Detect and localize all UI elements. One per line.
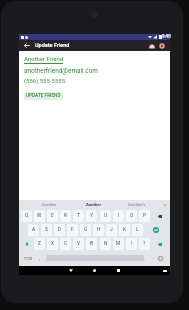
button[interactable]: Home	[147, 41, 156, 50]
button[interactable]: M	[113, 238, 124, 250]
staticText: P	[143, 213, 147, 219]
staticText: B	[90, 241, 93, 247]
button[interactable]: Comma	[33, 251, 46, 265]
button[interactable]: U	[100, 210, 111, 222]
button[interactable]: P	[139, 210, 150, 222]
staticText: Q	[25, 213, 29, 219]
button[interactable]: A	[28, 224, 39, 236]
button[interactable]: F	[67, 224, 78, 236]
button[interactable]: UPDATE FRIEND	[24, 92, 63, 100]
staticText: Another	[42, 202, 57, 207]
button[interactable]: J	[106, 224, 117, 236]
button[interactable]: D	[54, 224, 65, 236]
staticText: (556) 555-5555	[24, 77, 66, 84]
staticText: ?	[143, 241, 146, 247]
button[interactable]: Another	[74, 200, 114, 209]
button[interactable]: C	[60, 238, 71, 250]
button[interactable]: N	[100, 238, 111, 250]
staticText: F	[71, 227, 74, 233]
button[interactable]: Another	[29, 200, 69, 209]
staticText: H	[97, 227, 101, 233]
staticText: 9:48	[162, 34, 171, 39]
button[interactable]: Hide keyboard	[160, 266, 169, 275]
button[interactable]: B	[86, 238, 97, 250]
button[interactable]: K	[119, 224, 130, 236]
staticText: Y	[90, 213, 93, 219]
button[interactable]: Delete friend	[157, 41, 166, 50]
button[interactable]: I	[113, 210, 124, 222]
staticText: Another Friend	[24, 55, 64, 62]
staticText: R	[64, 213, 67, 219]
staticText: Update Friend	[35, 42, 70, 48]
button[interactable]: Q	[21, 210, 32, 222]
button[interactable]: X	[47, 238, 58, 250]
staticText: anotherfriend@email.com	[24, 67, 98, 75]
staticText: T	[77, 213, 80, 219]
button[interactable]: R	[60, 210, 71, 222]
button[interactable]: Y	[86, 210, 97, 222]
button[interactable]: S	[41, 224, 52, 236]
staticText: W	[37, 213, 42, 219]
staticText: Z	[38, 241, 41, 247]
staticText: M	[116, 241, 121, 247]
staticText: Another	[86, 202, 102, 207]
button[interactable]: Recent apps	[114, 266, 123, 275]
staticText: A	[32, 227, 36, 233]
button[interactable]: G	[80, 224, 91, 236]
button[interactable]: Another's	[117, 200, 157, 209]
staticText: V	[77, 241, 81, 247]
staticText: ,	[39, 256, 40, 261]
staticText: Another's	[128, 202, 146, 207]
staticText: !	[131, 241, 133, 247]
staticText: S	[45, 227, 48, 233]
staticText: K	[123, 227, 127, 233]
staticText: ?123	[24, 256, 33, 260]
staticText: L	[136, 227, 139, 233]
staticText: E	[51, 213, 54, 219]
staticText: .	[144, 256, 146, 261]
staticText: J	[110, 227, 113, 233]
button[interactable]: Enter	[146, 223, 166, 237]
staticText: I	[118, 213, 120, 219]
button[interactable]: L	[132, 224, 143, 236]
button[interactable]: Z	[34, 238, 45, 250]
staticText: N	[104, 241, 108, 247]
button[interactable]: ?	[139, 238, 150, 250]
staticText: U	[104, 213, 108, 219]
staticText: C	[64, 241, 68, 247]
button[interactable]: !	[126, 238, 137, 250]
button[interactable]: More suggestions	[160, 200, 170, 209]
staticText: O	[130, 213, 134, 219]
button[interactable]: E	[47, 210, 58, 222]
button[interactable]: W	[34, 210, 45, 222]
button[interactable]: Period	[138, 251, 151, 265]
button[interactable]: Home	[90, 266, 99, 275]
staticText: D	[58, 227, 62, 233]
button[interactable]: Back	[66, 266, 75, 275]
button[interactable]: Navigate up	[22, 41, 31, 50]
button[interactable]: Symbols	[20, 251, 36, 265]
button[interactable]: O	[126, 210, 137, 222]
button[interactable]: H	[93, 224, 104, 236]
staticText: G	[84, 227, 88, 233]
staticText: UPDATE FRIEND	[26, 93, 61, 99]
button[interactable]: Shift	[20, 237, 33, 251]
staticText: X	[51, 241, 55, 247]
button[interactable]: Backspace	[151, 237, 169, 251]
button[interactable]: V	[73, 238, 84, 250]
button[interactable]: Backspace	[151, 209, 169, 223]
button[interactable]: T	[73, 210, 84, 222]
button[interactable]: Emoji	[151, 251, 169, 265]
